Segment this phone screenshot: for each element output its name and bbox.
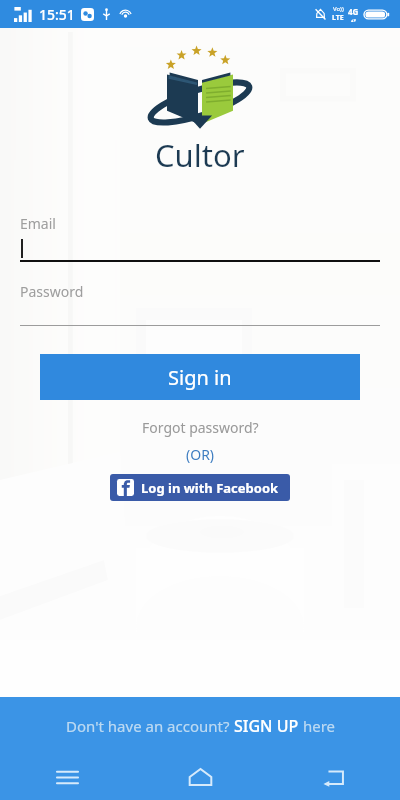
button[interactable]: Forgot password? (136, 416, 265, 439)
button[interactable]: Home (174, 754, 226, 800)
staticText: SIGN UP (234, 715, 299, 737)
staticText: Password (20, 282, 84, 301)
staticText: Email (20, 214, 56, 233)
button[interactable]: Password (20, 282, 380, 326)
staticText: here (299, 716, 335, 736)
staticText: (OR) (186, 445, 215, 464)
staticText: 4G (348, 6, 359, 17)
staticText: ▴▾ (351, 17, 357, 23)
staticText: LTE (332, 13, 344, 23)
staticText: Vo)) (333, 5, 344, 13)
button[interactable]: Recent apps (41, 754, 93, 800)
staticText: 15:51 (39, 5, 75, 24)
button[interactable]: Sign in (40, 354, 360, 400)
staticText: Sign in (168, 364, 232, 391)
button[interactable]: Log in with Facebook (110, 474, 290, 501)
staticText: Don't have an account? (66, 716, 234, 736)
button[interactable]: Don't have an account? (0, 697, 400, 754)
staticText: Forgot password? (142, 418, 259, 437)
button[interactable]: Email (20, 214, 380, 262)
staticText: Cultor (155, 134, 245, 176)
button[interactable]: Back (307, 754, 359, 800)
staticText: Log in with Facebook (141, 479, 279, 497)
